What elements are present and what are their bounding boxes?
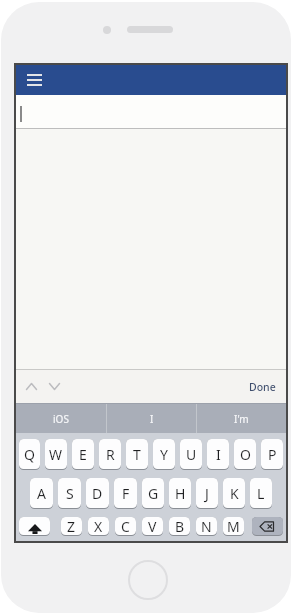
staticText: E bbox=[79, 445, 87, 464]
staticText: Q bbox=[24, 445, 35, 464]
button[interactable]: Done bbox=[249, 370, 276, 403]
button[interactable]: F bbox=[114, 478, 137, 508]
staticText: I bbox=[216, 445, 221, 464]
staticText: I bbox=[150, 412, 154, 426]
button[interactable]: B bbox=[169, 517, 190, 535]
button[interactable]: A bbox=[30, 478, 53, 508]
staticText: W bbox=[49, 445, 63, 464]
button[interactable] bbox=[19, 517, 50, 535]
staticText: X bbox=[94, 517, 103, 535]
button[interactable]: iOS bbox=[16, 404, 106, 433]
button[interactable]: T bbox=[126, 439, 148, 469]
button[interactable]: I'm bbox=[197, 404, 286, 433]
button[interactable]: P bbox=[261, 439, 283, 469]
button[interactable] bbox=[26, 383, 37, 390]
button[interactable]: Y bbox=[153, 439, 175, 469]
button[interactable]: W bbox=[45, 439, 67, 469]
staticText: M bbox=[227, 517, 240, 535]
staticText: O bbox=[240, 445, 251, 464]
staticText: R bbox=[106, 445, 115, 464]
button[interactable]: S bbox=[58, 478, 81, 508]
staticText: Done bbox=[249, 380, 276, 394]
button[interactable] bbox=[16, 95, 286, 128]
button[interactable]: E bbox=[72, 439, 94, 469]
button[interactable]: L bbox=[250, 478, 272, 508]
button[interactable] bbox=[49, 383, 60, 390]
staticText: T bbox=[133, 445, 141, 464]
staticText: C bbox=[121, 517, 130, 535]
button[interactable]: I bbox=[207, 439, 229, 469]
button[interactable]: C bbox=[115, 517, 136, 535]
button[interactable]: N bbox=[196, 517, 217, 535]
staticText: iOS bbox=[53, 412, 69, 426]
button[interactable]: O bbox=[234, 439, 256, 469]
staticText: Y bbox=[160, 445, 168, 464]
button[interactable]: D bbox=[86, 478, 109, 508]
button[interactable]: M bbox=[223, 517, 244, 535]
staticText: N bbox=[201, 517, 212, 535]
staticText: B bbox=[175, 517, 185, 535]
staticText: U bbox=[186, 445, 197, 464]
staticText: H bbox=[175, 484, 186, 503]
button[interactable]: J bbox=[196, 478, 218, 508]
staticText: A bbox=[37, 484, 46, 503]
button[interactable]: R bbox=[99, 439, 121, 469]
button[interactable]: H bbox=[169, 478, 191, 508]
button[interactable]: Q bbox=[19, 439, 40, 469]
staticText: J bbox=[205, 484, 209, 503]
button[interactable]: U bbox=[180, 439, 202, 469]
button[interactable]: K bbox=[223, 478, 245, 508]
staticText: I'm bbox=[234, 412, 249, 426]
button[interactable] bbox=[252, 517, 283, 535]
staticText: K bbox=[230, 484, 239, 503]
staticText: F bbox=[122, 484, 130, 503]
staticText: Z bbox=[67, 517, 76, 535]
button[interactable]: Z bbox=[61, 517, 82, 535]
staticText: G bbox=[148, 484, 159, 503]
staticText: V bbox=[148, 517, 157, 535]
staticText: P bbox=[268, 445, 277, 464]
button[interactable]: G bbox=[142, 478, 164, 508]
button[interactable] bbox=[16, 65, 52, 95]
staticText: S bbox=[66, 484, 74, 503]
button[interactable]: X bbox=[88, 517, 109, 535]
button[interactable]: V bbox=[142, 517, 163, 535]
staticText: D bbox=[92, 484, 103, 503]
staticText: L bbox=[257, 484, 265, 503]
button[interactable]: I bbox=[107, 404, 196, 433]
